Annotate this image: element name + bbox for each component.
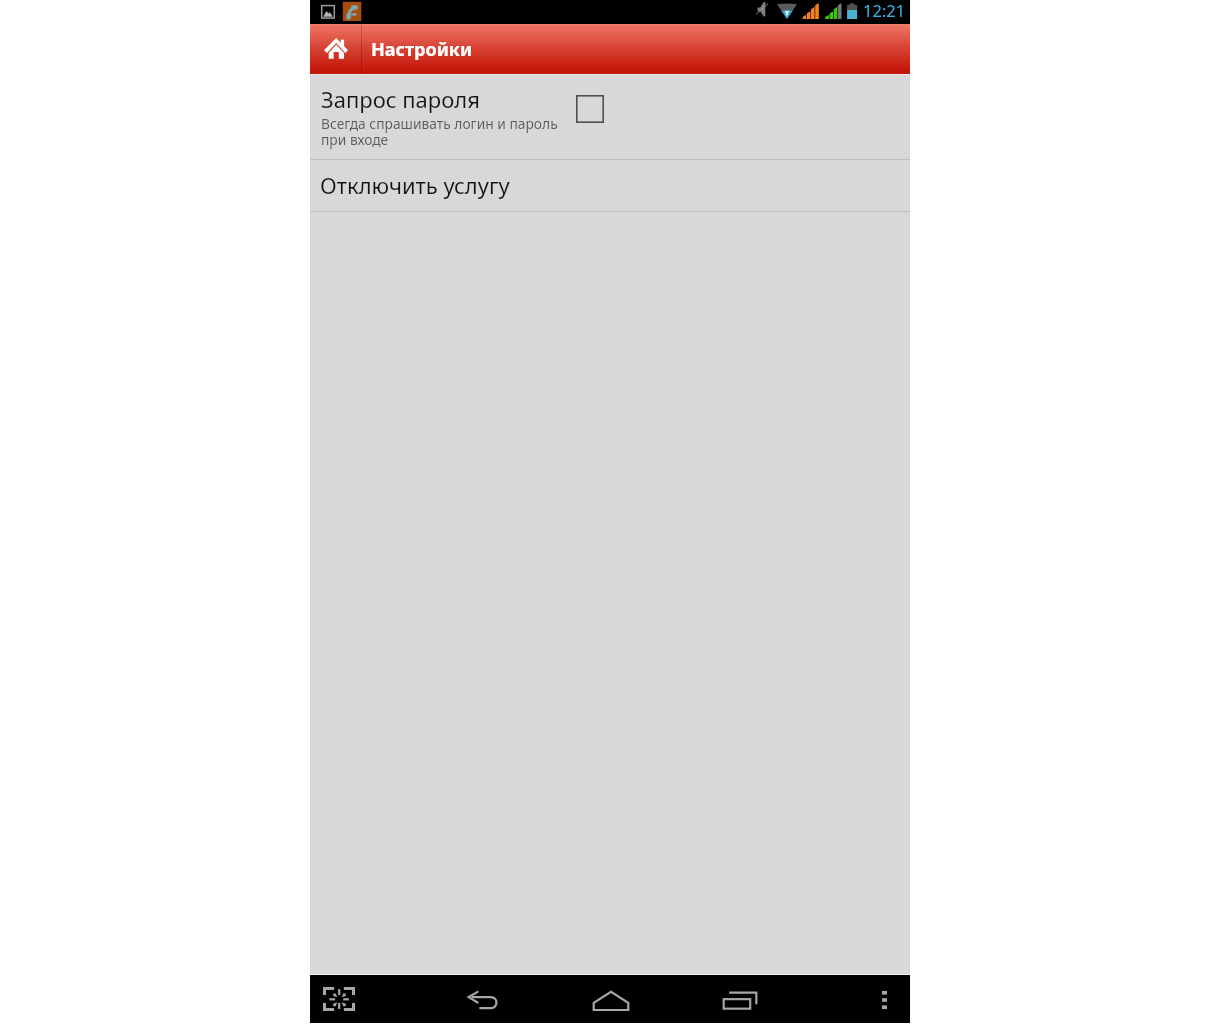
button[interactable]: Home: [310, 24, 361, 74]
button[interactable]: More options: [864, 975, 905, 1023]
button[interactable]: Запрос пароля: [310, 75, 910, 159]
button[interactable]: Screenshot: [310, 975, 368, 1023]
button[interactable]: Recent apps: [705, 975, 775, 1023]
staticText: Настройки: [371, 37, 473, 62]
staticText: 12:21: [863, 0, 906, 21]
button[interactable]: Отключить услугу: [310, 160, 910, 211]
staticText: Отключить услугу: [320, 170, 510, 200]
button[interactable]: Back: [448, 975, 518, 1023]
button[interactable]: Home: [576, 975, 646, 1023]
staticText: Всегда спрашивать логин и пароль при вхо…: [321, 114, 561, 149]
staticText: Запрос пароля: [321, 84, 480, 114]
